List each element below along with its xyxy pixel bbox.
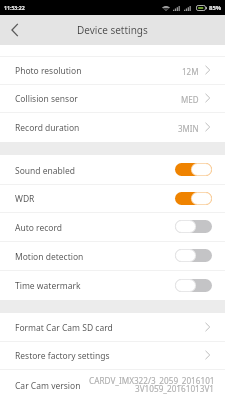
staticText: Restore factory settings (15, 350, 110, 362)
button[interactable]: Toggle off (175, 220, 212, 233)
button[interactable]: Back (0, 15, 30, 45)
staticText: 3V1059_20161013V1 (135, 383, 215, 394)
staticText: Record duration (15, 122, 80, 134)
staticText: Motion detection (15, 251, 84, 263)
button[interactable]: Format Car Cam SD card (0, 313, 225, 341)
button[interactable]: Motion detection (0, 241, 225, 270)
staticText: WDR (15, 193, 35, 205)
staticText: Time watermark (15, 280, 81, 292)
staticText: MED (181, 94, 199, 105)
button[interactable]: Toggle off (175, 249, 212, 262)
button[interactable]: Record duration (0, 112, 225, 142)
button[interactable]: Toggle on (175, 192, 212, 205)
button[interactable]: Toggle off (175, 279, 212, 292)
staticText: Auto record (15, 222, 63, 234)
staticText: Car Cam version (15, 380, 81, 392)
staticText: 12M (182, 66, 199, 77)
staticText: Sound enabled (15, 165, 76, 177)
staticText: Format Car Cam SD card (15, 322, 113, 334)
button[interactable]: Collision sensor (0, 84, 225, 112)
button[interactable]: Photo resolution (0, 56, 225, 84)
staticText: Device settings (77, 23, 148, 37)
staticText: 3MIN (178, 123, 199, 134)
button[interactable]: Toggle on (175, 163, 212, 176)
button[interactable]: Time watermark (0, 270, 225, 300)
staticText: CARDV_IMX322/3_2059_2016101 (89, 375, 215, 386)
button[interactable]: WDR (0, 184, 225, 212)
button[interactable]: Sound enabled (0, 155, 225, 184)
staticText: 85% (209, 4, 222, 12)
button[interactable]: Restore factory settings (0, 341, 225, 369)
staticText: 11:53:22 (4, 4, 25, 11)
staticText: Photo resolution (15, 65, 82, 77)
staticText: Collision sensor (15, 93, 78, 105)
button[interactable]: Auto record (0, 212, 225, 241)
